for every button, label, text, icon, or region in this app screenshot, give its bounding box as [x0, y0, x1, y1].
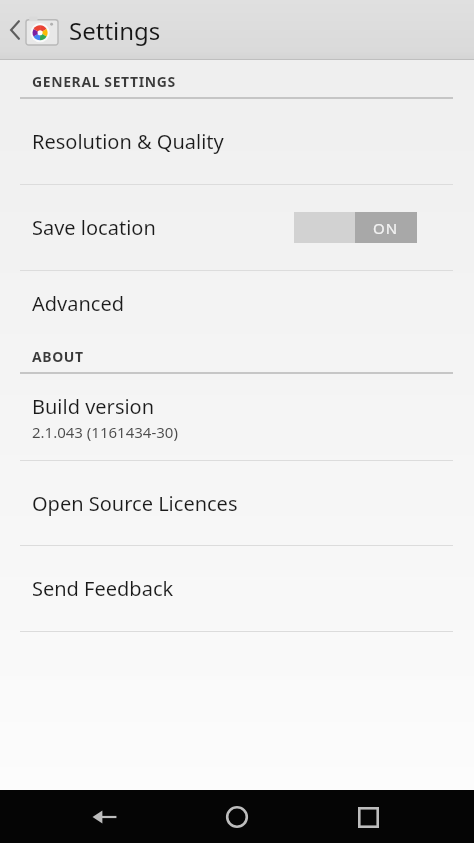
staticText: Open Source Licences: [32, 490, 238, 517]
button[interactable]: Open Source Licences: [0, 461, 474, 545]
button[interactable]: Back: [79, 791, 131, 843]
staticText: Send Feedback: [32, 575, 174, 602]
staticText: Settings: [69, 14, 161, 47]
staticText: Resolution & Quality: [32, 128, 224, 155]
button[interactable]: Send Feedback: [0, 546, 474, 631]
staticText: 2.1.043 (1161434-30): [32, 422, 178, 442]
staticText: Save location: [32, 214, 156, 241]
button[interactable]: Recent apps: [342, 791, 394, 843]
staticText: ABOUT: [32, 347, 84, 366]
button[interactable]: Build version: [0, 374, 474, 460]
staticText: ON: [373, 218, 399, 238]
staticText: Advanced: [32, 290, 124, 317]
button[interactable]: Advanced: [0, 271, 474, 335]
button[interactable]: Resolution & Quality: [0, 99, 474, 184]
button[interactable]: Home: [211, 791, 263, 843]
staticText: Build version: [32, 393, 155, 420]
staticText: GENERAL SETTINGS: [32, 72, 176, 91]
button[interactable]: Settings: [0, 0, 474, 60]
button[interactable]: Save location: [0, 185, 474, 270]
